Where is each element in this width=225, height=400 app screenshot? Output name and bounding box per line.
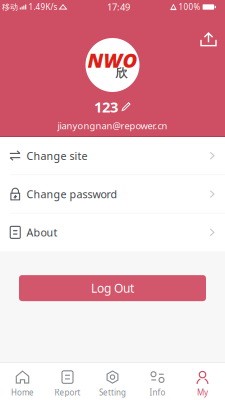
staticText: 移动 xyxy=(2,2,18,12)
button[interactable]: My xyxy=(180,363,225,400)
staticText: 欣 xyxy=(115,66,127,80)
staticText: Change password xyxy=(26,187,117,201)
button[interactable]: Setting xyxy=(90,363,135,400)
staticText: Report xyxy=(54,387,80,398)
staticText: 1.49K/s xyxy=(28,2,57,12)
button[interactable]: Share xyxy=(200,32,217,47)
staticText: Change site xyxy=(26,149,87,163)
staticText: Info xyxy=(149,387,165,398)
staticText: 123 xyxy=(94,97,118,116)
staticText: Setting xyxy=(99,387,126,398)
staticText: NWO xyxy=(87,47,137,73)
staticText: 17:49 xyxy=(107,1,130,13)
button[interactable]: Info xyxy=(135,363,180,400)
button[interactable]: Log Out xyxy=(19,275,206,301)
staticText: Home xyxy=(11,387,34,398)
button[interactable]: Home xyxy=(0,363,45,400)
staticText: About xyxy=(26,225,57,239)
button[interactable]: Report xyxy=(45,363,90,400)
button[interactable]: Change password xyxy=(0,175,225,213)
button[interactable]: Change site xyxy=(0,137,225,174)
staticText: jianyongnan@repower.cn xyxy=(57,119,167,132)
button[interactable]: About xyxy=(0,214,225,251)
staticText: My xyxy=(197,387,208,398)
button[interactable]: Edit name xyxy=(121,102,131,112)
staticText: Log Out xyxy=(91,280,134,296)
staticText: 100% xyxy=(178,2,200,12)
